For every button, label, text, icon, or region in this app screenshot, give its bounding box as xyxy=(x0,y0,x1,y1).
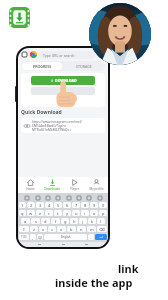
button[interactable]: Keyboard tool 6 xyxy=(76,195,81,200)
button[interactable]: ⌫ xyxy=(97,226,107,232)
button[interactable]: Enter xyxy=(95,234,107,240)
button[interactable]: c xyxy=(48,226,56,232)
button[interactable]: 0 xyxy=(99,202,107,208)
button[interactable]: 3 xyxy=(36,202,44,208)
staticText: y xyxy=(66,211,69,216)
button[interactable]: u xyxy=(72,210,80,216)
staticText: 6 xyxy=(66,203,69,208)
staticText: 3 xyxy=(39,203,42,208)
button[interactable]: 4 xyxy=(45,202,53,208)
staticText: . xyxy=(90,235,92,240)
button[interactable]: h xyxy=(70,218,78,224)
button[interactable]: ⇧ xyxy=(19,226,29,232)
staticText: h xyxy=(73,219,76,224)
button[interactable]: p xyxy=(99,210,107,216)
button[interactable]: o xyxy=(90,210,98,216)
button[interactable]: t xyxy=(54,210,62,216)
button[interactable]: Type URL or search xyxy=(39,51,95,59)
staticText: v xyxy=(60,227,63,232)
button[interactable]: My profile xyxy=(86,177,106,193)
button[interactable]: 5 xyxy=(54,202,62,208)
button[interactable]: e xyxy=(36,210,44,216)
staticText: m xyxy=(90,227,94,232)
staticText: a xyxy=(24,219,27,224)
staticText: w xyxy=(29,211,33,216)
button[interactable]: Profile photo xyxy=(89,3,151,65)
button[interactable]: STORAGE xyxy=(63,61,105,71)
button[interactable]: z xyxy=(30,226,38,232)
staticText: k xyxy=(91,219,94,224)
staticText: 9 xyxy=(93,203,96,208)
button[interactable]: Keyboard tool 1 xyxy=(24,195,29,200)
button[interactable]: 6 xyxy=(63,202,71,208)
button[interactable]: i xyxy=(81,210,89,216)
button[interactable]: DOWNLOAD xyxy=(31,76,95,85)
button[interactable]: 2 xyxy=(27,202,35,208)
button[interactable]: https://www.instagram.com/reel/ CMSLAwEB… xyxy=(21,118,105,133)
button[interactable]: Downloads xyxy=(42,177,62,193)
button[interactable]: Keyboard tool 3 xyxy=(45,195,50,200)
button[interactable]: r xyxy=(45,210,53,216)
button[interactable]: Tabs xyxy=(21,51,28,58)
button[interactable]: 9 xyxy=(90,202,98,208)
button[interactable]: Keyboard tool 7 xyxy=(86,195,91,200)
button[interactable]: s xyxy=(31,218,40,224)
button[interactable]: m xyxy=(87,226,96,232)
button[interactable]: . xyxy=(88,234,94,240)
button[interactable]: f xyxy=(51,218,60,224)
button[interactable]: 7 xyxy=(72,202,80,208)
button[interactable]: l xyxy=(97,218,105,224)
staticText: Home xyxy=(26,187,35,191)
button[interactable]: 8 xyxy=(81,202,89,208)
staticText: ?123 xyxy=(21,235,27,239)
staticText: d xyxy=(44,219,47,224)
button[interactable]: Keyboard tool 8 xyxy=(97,195,102,200)
button[interactable]: Keyboard tool 2 xyxy=(35,195,40,200)
staticText: z xyxy=(33,227,35,232)
staticText: My profile xyxy=(89,187,104,191)
button[interactable]: q xyxy=(19,210,26,216)
button[interactable]: v xyxy=(57,226,66,232)
button[interactable]: b xyxy=(67,226,76,232)
button[interactable]: Home xyxy=(20,177,40,193)
button[interactable]: PROGRESS xyxy=(22,62,62,70)
staticText: 0 xyxy=(102,203,105,208)
staticText: 8 xyxy=(84,203,87,208)
button[interactable]: Browser xyxy=(30,51,37,58)
button[interactable]: d xyxy=(41,218,50,224)
button[interactable]: ?123 xyxy=(19,234,29,240)
button[interactable]: ☺ xyxy=(37,234,43,240)
staticText: https://www.instagram.com/reel/ CMSLAwEB… xyxy=(32,120,82,132)
button[interactable]: y xyxy=(63,210,71,216)
staticText: inside the app xyxy=(55,275,133,290)
button[interactable]: a xyxy=(21,218,30,224)
button[interactable]: Player xyxy=(64,177,84,193)
button[interactable]: j xyxy=(79,218,87,224)
staticText: ☺ xyxy=(38,235,43,240)
button[interactable]: k xyxy=(88,218,96,224)
staticText: o xyxy=(93,211,96,216)
staticText: c xyxy=(51,227,53,232)
button[interactable]: g xyxy=(61,218,69,224)
button[interactable]: n xyxy=(77,226,86,232)
button[interactable]: Keyboard tool 4 xyxy=(55,195,60,200)
button[interactable]: Keyboard tool 5 xyxy=(66,195,71,200)
staticText: e xyxy=(39,211,42,216)
button[interactable]: 1 xyxy=(19,202,26,208)
button[interactable]: w xyxy=(27,210,35,216)
staticText: x xyxy=(42,227,45,232)
button[interactable]: English xyxy=(44,234,87,240)
button[interactable]: , xyxy=(30,234,36,240)
staticText: f xyxy=(55,219,57,224)
staticText: 2 xyxy=(30,203,33,208)
staticText: g xyxy=(64,219,67,224)
staticText: ⌫ xyxy=(99,227,105,232)
button[interactable]: Download xyxy=(97,51,105,59)
button[interactable]: x xyxy=(39,226,47,232)
staticText: j xyxy=(82,219,84,224)
staticText: Type URL or search xyxy=(43,53,75,58)
button[interactable]: Video downloader app icon xyxy=(9,7,30,28)
